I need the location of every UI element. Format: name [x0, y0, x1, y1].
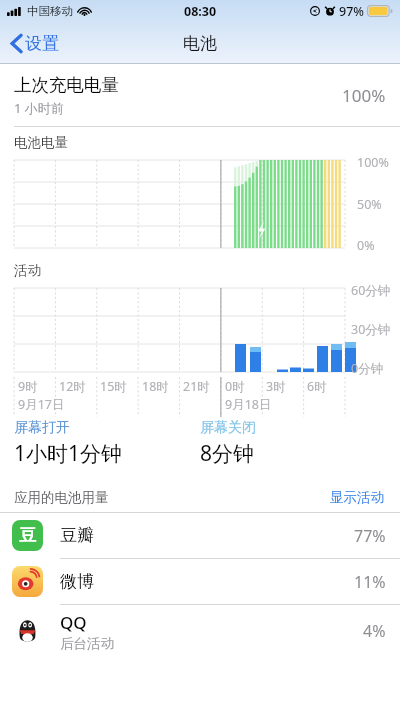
staticText: 1 小时前	[14, 99, 64, 117]
other: 豆瓣	[12, 520, 43, 551]
staticText: 屏幕关闭	[200, 419, 256, 437]
button[interactable]: 显示活动	[328, 487, 386, 508]
other: 微博	[12, 566, 43, 597]
staticText: 中国移动	[27, 4, 73, 18]
button[interactable]: QQ	[0, 605, 400, 657]
staticText: 77%	[354, 525, 386, 547]
staticText: 9月18日	[225, 396, 272, 413]
staticText: 08:30	[184, 3, 217, 20]
staticText: 电池电量	[14, 134, 68, 151]
staticText: 9月17日	[18, 396, 65, 413]
staticText: QQ	[60, 611, 87, 634]
staticText: 11%	[354, 571, 386, 593]
staticText: 8分钟	[200, 439, 255, 468]
button[interactable]: 设置	[7, 28, 63, 59]
staticText: 上次充电电量	[14, 74, 119, 96]
staticText: 后台活动	[60, 635, 114, 652]
staticText: 1小时1分钟	[14, 439, 123, 468]
staticText: 100%	[342, 84, 386, 107]
staticText: 0时	[225, 378, 245, 395]
staticText: 3时	[266, 378, 286, 395]
staticText: 豆	[19, 525, 36, 546]
staticText: 应用的电池用量	[14, 489, 328, 506]
staticText: 豆瓣	[60, 525, 94, 546]
staticText: 设置	[25, 33, 59, 54]
staticText: 18时	[142, 378, 169, 395]
button[interactable]: 微博	[0, 559, 400, 604]
button[interactable]: 上次充电电量	[0, 64, 400, 126]
staticText: 0分钟	[351, 360, 384, 377]
staticText: 12时	[59, 378, 86, 395]
staticText: 100%	[357, 154, 389, 171]
staticText: 50%	[357, 196, 382, 213]
button[interactable]: 豆瓣	[0, 513, 400, 558]
staticText: 0%	[357, 237, 375, 254]
staticText: 6时	[307, 378, 327, 395]
staticText: 97%	[339, 3, 364, 20]
other: QQ	[12, 616, 43, 647]
staticText: 9时	[18, 378, 38, 395]
staticText: 30分钟	[351, 321, 391, 338]
staticText: 电池	[183, 33, 217, 54]
staticText: 活动	[14, 262, 41, 279]
staticText: 60分钟	[351, 282, 391, 299]
staticText: 微博	[60, 571, 94, 592]
staticText: 21时	[183, 378, 210, 395]
staticText: 4%	[363, 620, 386, 642]
staticText: 15时	[100, 378, 127, 395]
staticText: 显示活动	[330, 489, 384, 506]
staticText: 屏幕打开	[14, 419, 70, 437]
